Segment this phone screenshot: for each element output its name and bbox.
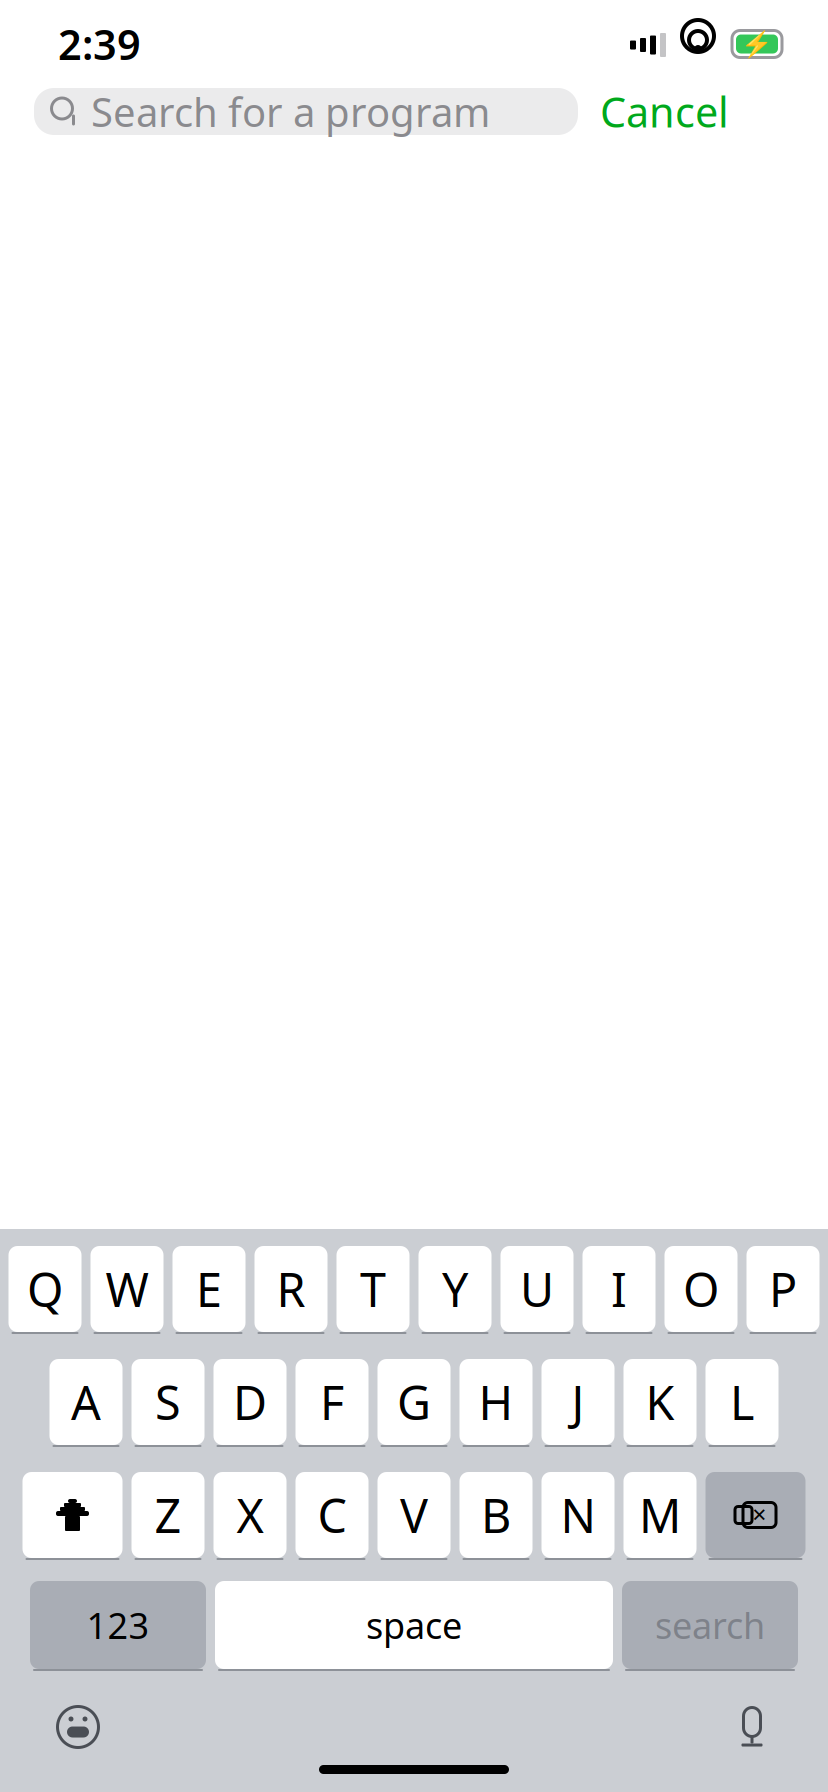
button[interactable]: O (664, 1246, 737, 1334)
staticText: M (639, 1484, 681, 1546)
button[interactable]: M (623, 1472, 696, 1560)
button[interactable]: J (541, 1359, 614, 1447)
staticText: Search for a program (91, 85, 490, 138)
button[interactable]: W (90, 1246, 163, 1334)
button[interactable]: R (254, 1246, 327, 1334)
staticText: C (317, 1484, 346, 1546)
button[interactable]: Emoji (54, 1702, 102, 1752)
button[interactable]: I (582, 1246, 655, 1334)
button[interactable]: B (459, 1472, 532, 1560)
staticText: H (478, 1371, 513, 1433)
staticText: L (730, 1371, 754, 1433)
staticText: search (655, 1601, 765, 1649)
button[interactable]: G (377, 1359, 450, 1447)
staticText: ⚡ (741, 29, 773, 58)
button[interactable]: Dictate (732, 1704, 772, 1750)
staticText: N (560, 1484, 595, 1546)
staticText: Y (442, 1258, 468, 1320)
staticText: O (683, 1258, 719, 1320)
staticText: S (155, 1371, 181, 1433)
staticText: F (320, 1371, 344, 1433)
button[interactable]: Shift (22, 1472, 122, 1560)
button[interactable]: S (131, 1359, 204, 1447)
button[interactable]: F (295, 1359, 368, 1447)
button[interactable]: A (49, 1359, 122, 1447)
button[interactable]: V (377, 1472, 450, 1560)
staticText: ✕ (751, 1504, 767, 1526)
staticText: J (571, 1371, 584, 1433)
staticText: Cancel (600, 84, 729, 139)
staticText: D (233, 1371, 267, 1433)
button[interactable]: C (295, 1472, 368, 1560)
button[interactable]: L (705, 1359, 778, 1447)
staticText: A (71, 1371, 101, 1433)
button[interactable]: N (541, 1472, 614, 1560)
staticText: U (520, 1258, 554, 1320)
staticText: K (645, 1371, 674, 1433)
staticText: X (236, 1484, 263, 1546)
button[interactable]: U (500, 1246, 573, 1334)
button[interactable]: space (215, 1581, 613, 1671)
staticText: W (105, 1258, 148, 1320)
button[interactable]: Y (418, 1246, 491, 1334)
button[interactable]: D (213, 1359, 286, 1447)
button[interactable]: Search for a program (34, 88, 578, 135)
staticText: B (481, 1484, 511, 1546)
button[interactable]: X (213, 1472, 286, 1560)
button[interactable]: K (623, 1359, 696, 1447)
staticText: G (397, 1371, 431, 1433)
staticText: 123 (86, 1601, 149, 1649)
button[interactable]: E (172, 1246, 245, 1334)
staticText: V (400, 1484, 428, 1546)
button[interactable]: T (336, 1246, 409, 1334)
staticText: I (611, 1258, 627, 1320)
button[interactable]: Delete (705, 1472, 805, 1560)
staticText: R (276, 1258, 305, 1320)
staticText: space (366, 1601, 462, 1649)
button[interactable]: P (746, 1246, 819, 1334)
staticText: P (769, 1258, 797, 1320)
button[interactable]: 123 (30, 1581, 206, 1671)
staticText: E (196, 1258, 222, 1320)
button[interactable]: search (622, 1581, 798, 1671)
button[interactable]: H (459, 1359, 532, 1447)
staticText: T (360, 1258, 386, 1320)
button[interactable]: Cancel (578, 88, 751, 135)
button[interactable]: Q (8, 1246, 81, 1334)
staticText: Q (27, 1258, 63, 1320)
staticText: 2:39 (58, 17, 141, 71)
staticText: Z (154, 1484, 181, 1546)
button[interactable]: Z (131, 1472, 204, 1560)
